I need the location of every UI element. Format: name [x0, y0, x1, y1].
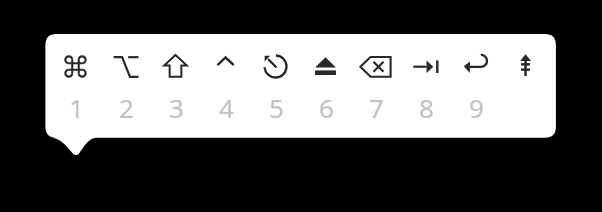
staticText: 6 — [319, 90, 334, 122]
button[interactable]: Reset — [252, 44, 300, 126]
button[interactable]: Return — [452, 44, 500, 126]
button[interactable]: Delete — [352, 44, 400, 126]
button[interactable]: Tab — [402, 44, 450, 126]
button[interactable]: Page up — [502, 44, 550, 126]
button[interactable]: Option — [102, 44, 150, 126]
button[interactable]: Control — [202, 44, 250, 126]
button[interactable]: Shift — [152, 44, 200, 126]
button[interactable]: Eject — [302, 44, 350, 126]
staticText: 9 — [469, 90, 484, 122]
staticText: 7 — [369, 90, 384, 122]
staticText: 3 — [169, 90, 184, 122]
button[interactable]: Command — [52, 44, 100, 126]
staticText: 5 — [269, 90, 284, 122]
staticText: 2 — [119, 90, 134, 122]
staticText: 1 — [69, 90, 84, 122]
staticText: 4 — [219, 90, 234, 122]
staticText: 8 — [419, 90, 434, 122]
